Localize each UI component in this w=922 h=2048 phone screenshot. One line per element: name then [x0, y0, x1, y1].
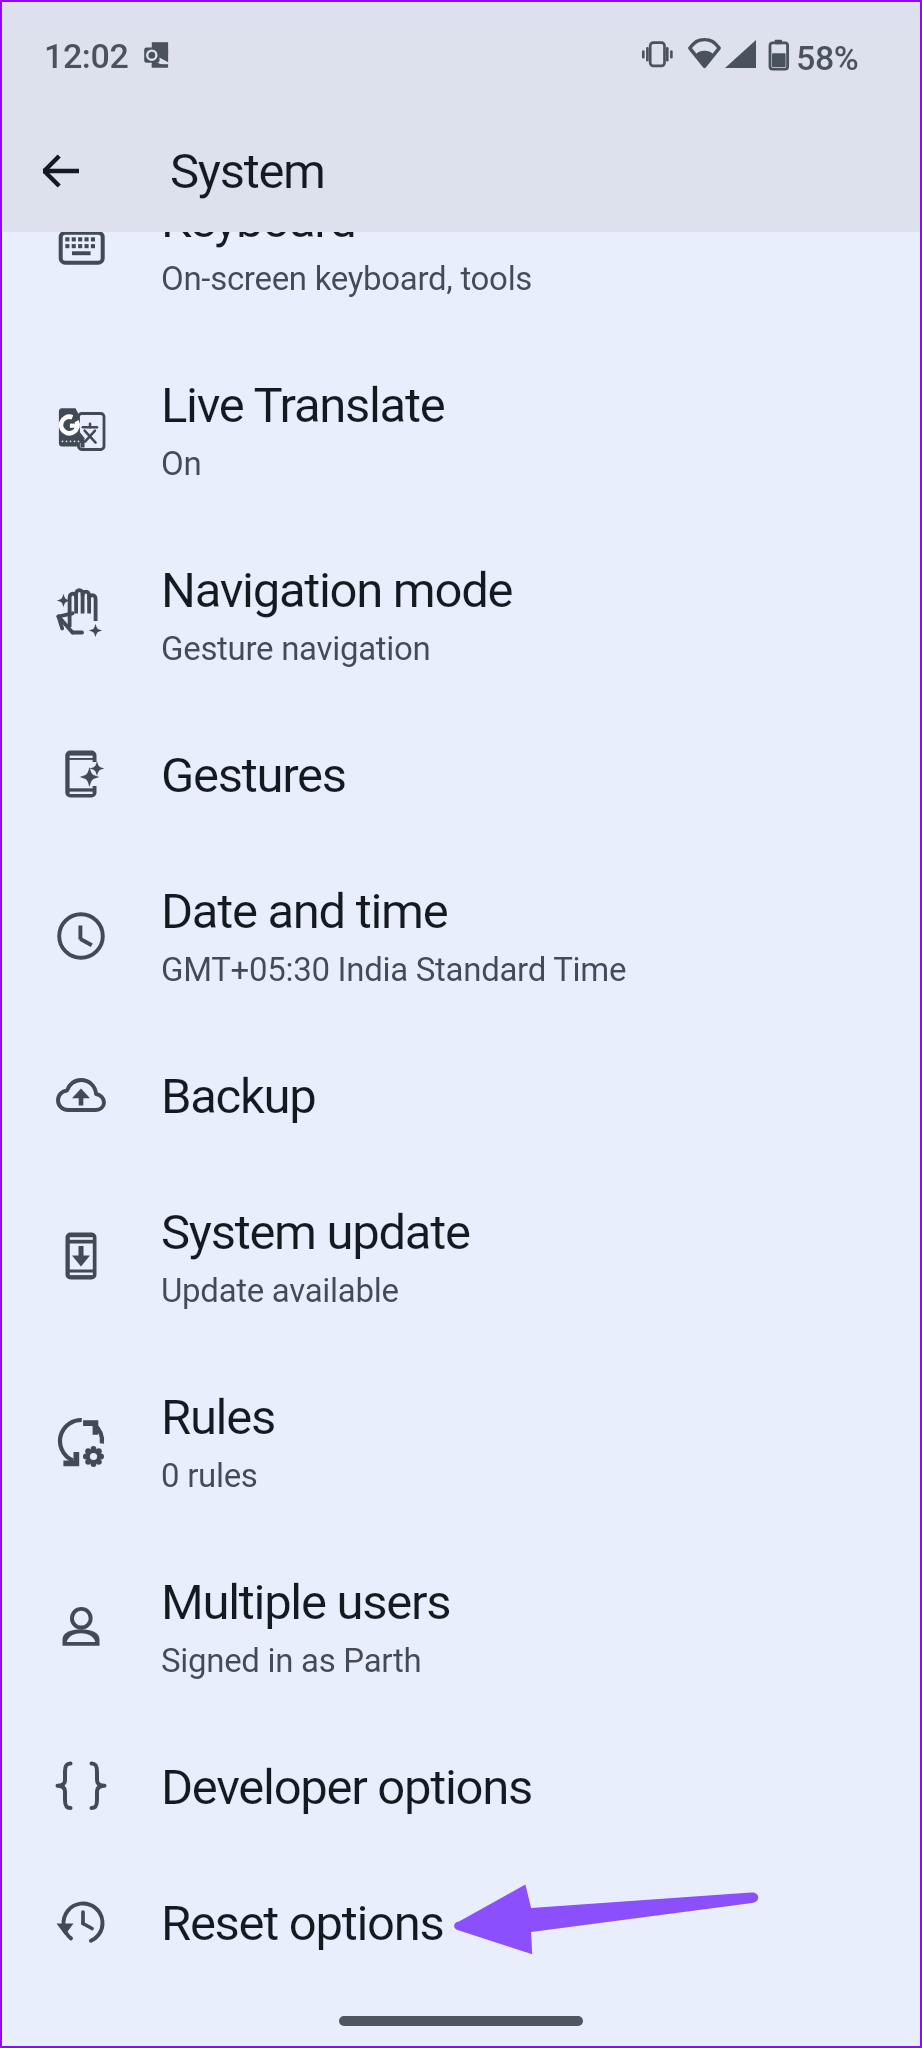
- button[interactable]: System update: [0, 1163, 922, 1348]
- staticText: GMT+05:30 India Standard Time: [161, 950, 627, 989]
- button[interactable]: Live Translate: [0, 336, 922, 521]
- staticText: Update available: [161, 1271, 399, 1310]
- staticText: Developer options: [161, 1759, 532, 1816]
- staticText: System: [170, 143, 325, 200]
- button[interactable]: Rules: [0, 1348, 922, 1533]
- staticText: 58%: [796, 38, 859, 78]
- staticText: Reset options: [161, 1895, 444, 1952]
- staticText: 12:02: [44, 36, 129, 76]
- button[interactable]: Multiple users: [0, 1533, 922, 1718]
- staticText: Live Translate: [161, 377, 445, 434]
- button[interactable]: Backup: [0, 1027, 922, 1163]
- button[interactable]: Developer options: [0, 1718, 922, 1854]
- staticText: On-screen keyboard, tools: [161, 259, 533, 298]
- staticText: Navigation mode: [161, 562, 513, 619]
- button[interactable]: Gestures: [0, 706, 922, 842]
- staticText: Rules: [161, 1389, 275, 1446]
- staticText: Signed in as Parth: [161, 1641, 422, 1680]
- staticText: Gestures: [161, 747, 346, 804]
- staticText: On: [161, 444, 202, 483]
- staticText: Gesture navigation: [161, 629, 431, 668]
- button[interactable]: Reset options: [0, 1854, 922, 1990]
- staticText: Multiple users: [161, 1574, 451, 1631]
- button[interactable]: Date and time: [0, 842, 922, 1027]
- button[interactable]: Keyboard: [0, 151, 922, 336]
- staticText: Date and time: [161, 883, 448, 940]
- staticText: Keyboard: [161, 192, 356, 249]
- button[interactable]: Navigation mode: [0, 521, 922, 706]
- staticText: Backup: [161, 1068, 316, 1125]
- staticText: System update: [161, 1204, 470, 1261]
- button[interactable]: Back: [22, 131, 102, 211]
- staticText: 0 rules: [161, 1456, 258, 1495]
